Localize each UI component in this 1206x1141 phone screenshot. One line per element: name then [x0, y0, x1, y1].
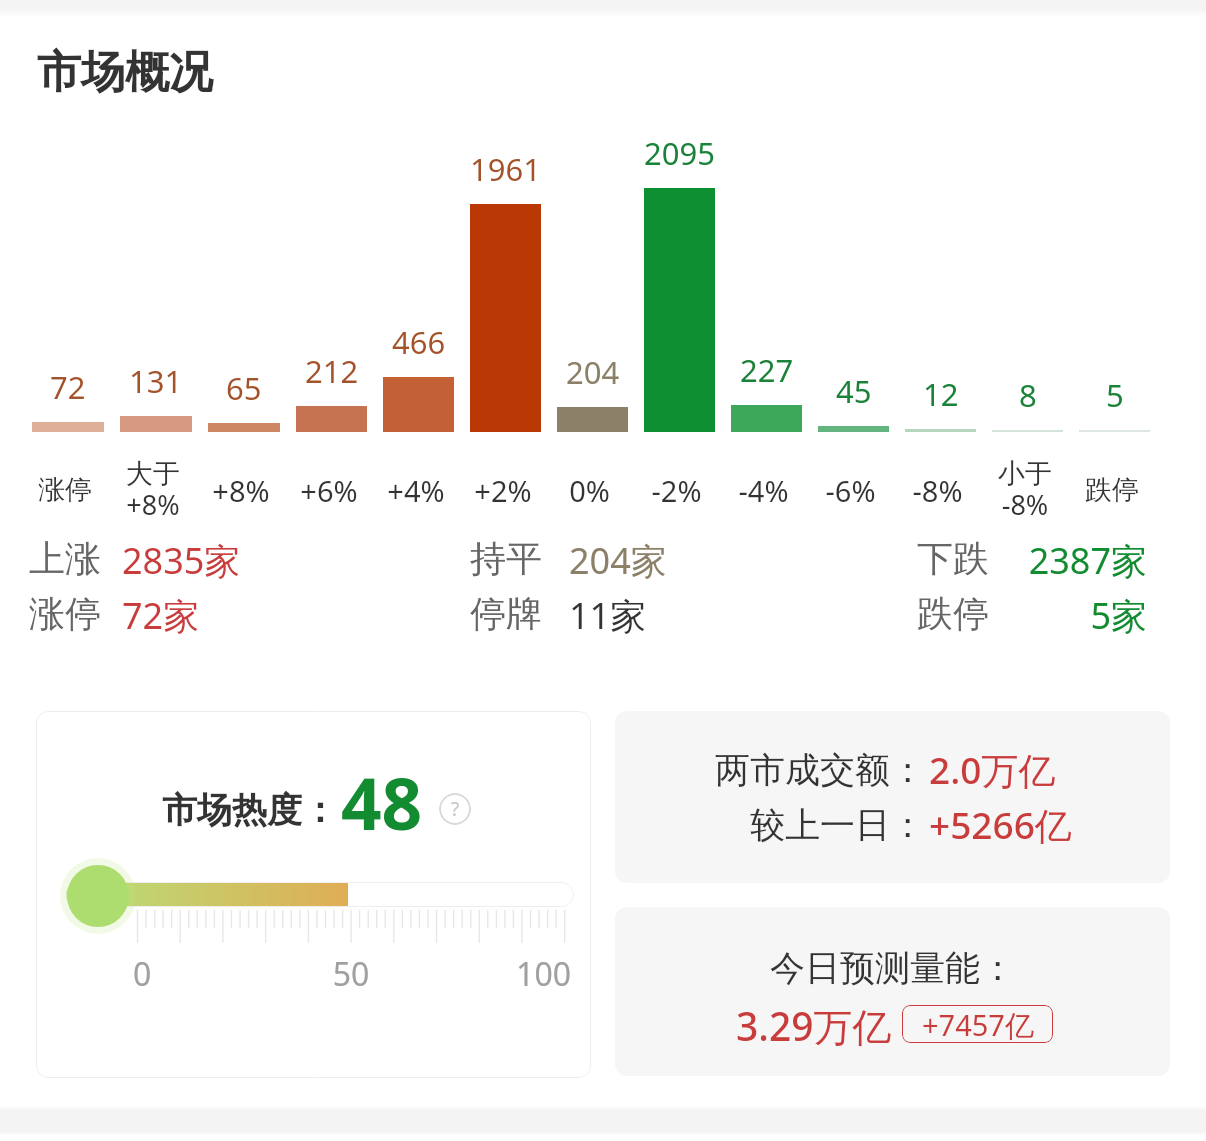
staticText: +2%: [474, 471, 532, 510]
staticText: 涨停: [29, 591, 101, 636]
staticText: 65: [226, 367, 262, 409]
staticText: 2835家: [122, 536, 241, 585]
staticText: 45: [836, 370, 872, 412]
staticText: +5266亿: [929, 799, 1072, 850]
staticText: 上涨: [29, 536, 101, 581]
staticText: -4%: [738, 471, 789, 510]
staticText: 市场热度：: [162, 788, 337, 832]
staticText: 1961: [470, 148, 541, 190]
staticText: +6%: [300, 471, 358, 510]
staticText: -6%: [825, 471, 876, 510]
staticText: 小于 -8%: [998, 457, 1052, 523]
button[interactable]: 今日预测量能：: [615, 907, 1170, 1076]
staticText: +4%: [387, 471, 445, 510]
staticText: 2.0万亿: [929, 744, 1056, 795]
staticText: 5家: [917, 591, 1147, 640]
staticText: ?: [451, 796, 460, 822]
staticText: +7457亿: [922, 1005, 1034, 1043]
staticText: 5: [1106, 374, 1124, 416]
staticText: 2387家: [917, 536, 1147, 585]
staticText: 50: [311, 952, 391, 996]
staticText: 227: [740, 349, 794, 391]
staticText: 48: [341, 754, 423, 851]
staticText: 11家: [569, 591, 647, 640]
staticText: 3.29万亿: [736, 999, 892, 1052]
staticText: 72家: [122, 591, 200, 640]
staticText: 2095: [644, 132, 715, 174]
button[interactable]: 两市成交额：: [615, 711, 1170, 883]
staticText: 466: [392, 321, 446, 363]
staticText: 204家: [569, 536, 667, 585]
staticText: 8: [1019, 374, 1037, 416]
staticText: 较上一日：: [615, 803, 925, 847]
staticText: -2%: [651, 471, 702, 510]
staticText: +8%: [212, 471, 270, 510]
staticText: -8%: [912, 471, 963, 510]
staticText: 跌停: [1085, 473, 1139, 507]
staticText: 持平: [470, 536, 542, 581]
staticText: 100: [481, 952, 571, 996]
staticText: 市场概况: [37, 45, 213, 100]
staticText: 今日预测量能：: [615, 946, 1170, 990]
staticText: 大于 +8%: [126, 457, 180, 523]
staticText: 跌停: [917, 591, 989, 636]
staticText: 下跌: [917, 536, 989, 581]
staticText: 两市成交额：: [615, 748, 925, 792]
staticText: 204: [566, 351, 620, 393]
staticText: 212: [305, 350, 359, 392]
staticText: 131: [129, 360, 183, 402]
staticText: 涨停: [38, 473, 92, 507]
staticText: 72: [50, 366, 86, 408]
staticText: 0: [133, 952, 152, 996]
staticText: 0%: [569, 471, 610, 510]
button[interactable]: 市场热度：: [36, 711, 591, 1078]
staticText: 12: [923, 373, 959, 415]
staticText: 停牌: [470, 591, 542, 636]
button[interactable]: 市场热度说明: [439, 793, 471, 825]
